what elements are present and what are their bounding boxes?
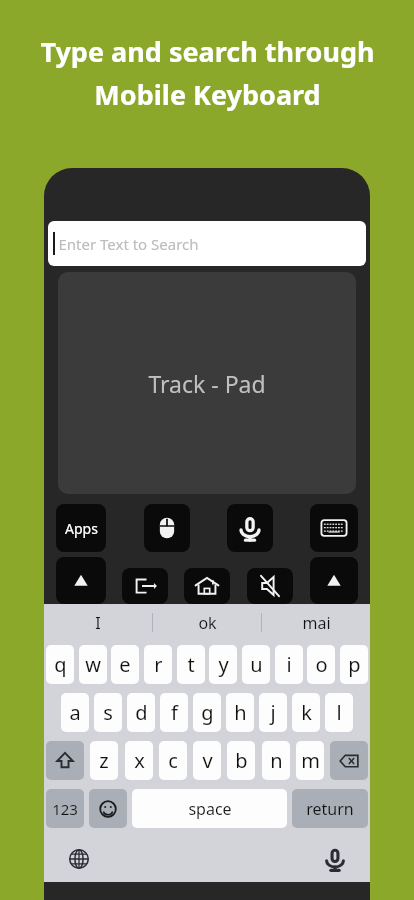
button[interactable]: g — [193, 693, 221, 732]
button[interactable]: Track pad — [58, 272, 356, 494]
button[interactable]: Mute — [247, 568, 293, 604]
staticText: h — [234, 699, 247, 726]
button[interactable]: b — [227, 741, 255, 780]
button[interactable]: Scroll down — [310, 557, 358, 604]
staticText: l — [336, 699, 342, 726]
button[interactable]: n — [262, 741, 290, 780]
staticText: y — [218, 651, 229, 678]
staticText: c — [168, 747, 178, 774]
staticText: Enter Text to Search — [58, 234, 199, 254]
button[interactable]: Keyboard — [310, 504, 358, 552]
staticText: Track - Pad — [148, 368, 266, 399]
button[interactable]: f — [160, 693, 188, 732]
staticText: p — [348, 651, 361, 678]
staticText: mai — [302, 612, 331, 634]
staticText: k — [301, 699, 312, 726]
button[interactable]: Microphone — [227, 504, 273, 552]
staticText: r — [154, 651, 163, 678]
button[interactable]: r — [144, 645, 172, 684]
staticText: z — [99, 747, 109, 774]
button[interactable]: Shift — [46, 741, 84, 780]
button[interactable]: t — [177, 645, 205, 684]
staticText: s — [103, 699, 113, 726]
button[interactable]: Mouse — [144, 504, 190, 552]
staticText: Mobile Keyboard — [94, 76, 321, 113]
button[interactable]: Change language — [62, 842, 96, 876]
button[interactable]: s — [94, 693, 122, 732]
staticText: 123 — [52, 799, 78, 819]
staticText: space — [188, 798, 232, 820]
button[interactable]: Scroll up — [56, 557, 106, 604]
staticText: g — [201, 699, 214, 726]
button[interactable]: c — [159, 741, 187, 780]
button[interactable]: Home — [184, 568, 230, 604]
staticText: v — [202, 747, 213, 774]
button[interactable]: z — [90, 741, 118, 780]
staticText: i — [286, 651, 292, 678]
staticText: f — [171, 699, 178, 726]
staticText: m — [301, 747, 320, 774]
button[interactable]: Emoji — [89, 789, 127, 828]
button[interactable]: I — [44, 604, 152, 641]
button[interactable]: Backspace — [330, 741, 368, 780]
staticText: b — [235, 747, 248, 774]
button[interactable]: i — [275, 645, 303, 684]
button[interactable]: u — [242, 645, 270, 684]
staticText: ok — [198, 612, 217, 634]
staticText: Type and search through — [40, 33, 375, 70]
staticText: x — [134, 747, 145, 774]
staticText: w — [85, 651, 101, 678]
staticText: a — [69, 699, 81, 726]
staticText: d — [135, 699, 148, 726]
button[interactable]: a — [61, 693, 89, 732]
staticText: Apps — [65, 519, 98, 538]
button[interactable]: p — [340, 645, 368, 684]
button[interactable]: e — [111, 645, 139, 684]
button[interactable]: v — [193, 741, 221, 780]
button[interactable]: q — [46, 645, 74, 684]
button[interactable]: d — [127, 693, 155, 732]
button[interactable]: x — [125, 741, 153, 780]
button[interactable]: o — [307, 645, 335, 684]
staticText: return — [306, 798, 354, 820]
button[interactable]: l — [325, 693, 353, 732]
button[interactable]: Enter Text to Search — [48, 221, 366, 266]
button[interactable]: k — [292, 693, 320, 732]
button[interactable]: Dictation — [318, 842, 352, 876]
button[interactable]: y — [209, 645, 237, 684]
staticText: n — [270, 747, 283, 774]
staticText: I — [95, 612, 101, 634]
staticText: q — [54, 651, 67, 678]
staticText: o — [315, 651, 328, 678]
button[interactable]: w — [79, 645, 107, 684]
button[interactable]: h — [226, 693, 254, 732]
button[interactable]: Exit — [122, 568, 168, 604]
button[interactable]: space — [132, 789, 287, 828]
staticText: t — [187, 651, 195, 678]
button[interactable]: 123 — [46, 789, 84, 828]
button[interactable]: Apps — [56, 504, 106, 552]
button[interactable]: ok — [153, 604, 261, 641]
button[interactable]: return — [292, 789, 368, 828]
staticText: j — [270, 699, 276, 726]
staticText: u — [250, 651, 263, 678]
button[interactable]: mai — [262, 604, 370, 641]
staticText: e — [119, 651, 131, 678]
button[interactable]: j — [259, 693, 287, 732]
button[interactable]: m — [296, 741, 324, 780]
